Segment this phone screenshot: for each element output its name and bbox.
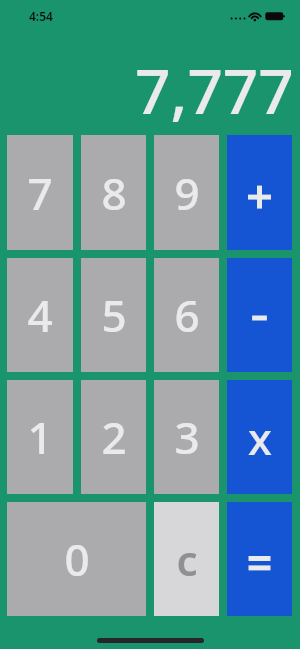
button[interactable]: 7 xyxy=(7,135,73,250)
button[interactable]: Plus xyxy=(227,135,292,250)
staticText: 9 xyxy=(174,163,200,223)
staticText: c xyxy=(176,531,198,588)
staticText: 2 xyxy=(101,407,127,467)
staticText: 1 xyxy=(27,407,53,467)
staticText: 7 xyxy=(27,163,53,223)
staticText: 8 xyxy=(101,163,127,223)
staticText: x xyxy=(248,408,272,468)
button[interactable]: c xyxy=(154,502,219,616)
button[interactable]: 2 xyxy=(81,380,146,494)
button[interactable]: 0 xyxy=(7,502,146,616)
staticText: 0 xyxy=(64,529,90,589)
button[interactable]: 3 xyxy=(154,380,219,494)
button[interactable]: 5 xyxy=(81,258,146,372)
staticText: 5 xyxy=(101,285,127,345)
button[interactable]: Minus xyxy=(227,258,292,372)
staticText: 7,777 xyxy=(135,48,294,132)
other: Signal, Wi-Fi and battery status xyxy=(228,6,288,26)
staticText: 4:54 xyxy=(29,8,53,24)
button[interactable]: 4 xyxy=(7,258,73,372)
staticText: 3 xyxy=(174,407,200,467)
button[interactable]: 9 xyxy=(154,135,219,250)
button[interactable]: 6 xyxy=(154,258,219,372)
staticText: 4 xyxy=(27,285,53,345)
button[interactable]: 1 xyxy=(7,380,73,494)
staticText: 6 xyxy=(174,285,200,345)
button[interactable]: 8 xyxy=(81,135,146,250)
button[interactable]: Multiply xyxy=(227,380,292,494)
button[interactable]: Equals xyxy=(227,502,292,616)
